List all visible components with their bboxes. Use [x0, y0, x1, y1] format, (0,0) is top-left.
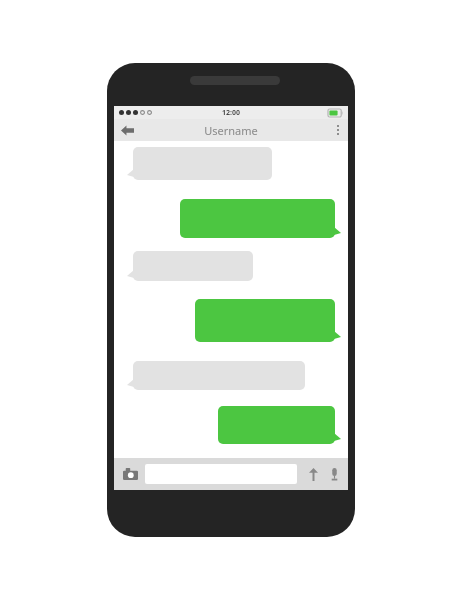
button[interactable]: [180, 199, 341, 238]
button[interactable]: More options: [328, 119, 348, 141]
staticText: Username: [204, 123, 258, 138]
button[interactable]: [218, 406, 341, 444]
staticText: 12:00: [222, 108, 240, 118]
button[interactable]: [195, 299, 341, 342]
button[interactable]: Back: [114, 119, 140, 141]
button[interactable]: Send: [303, 461, 323, 487]
button[interactable]: [127, 361, 305, 390]
button[interactable]: [127, 147, 272, 180]
button[interactable]: Camera: [118, 461, 142, 487]
button[interactable]: Voice input: [324, 461, 344, 487]
button[interactable]: [127, 251, 253, 281]
